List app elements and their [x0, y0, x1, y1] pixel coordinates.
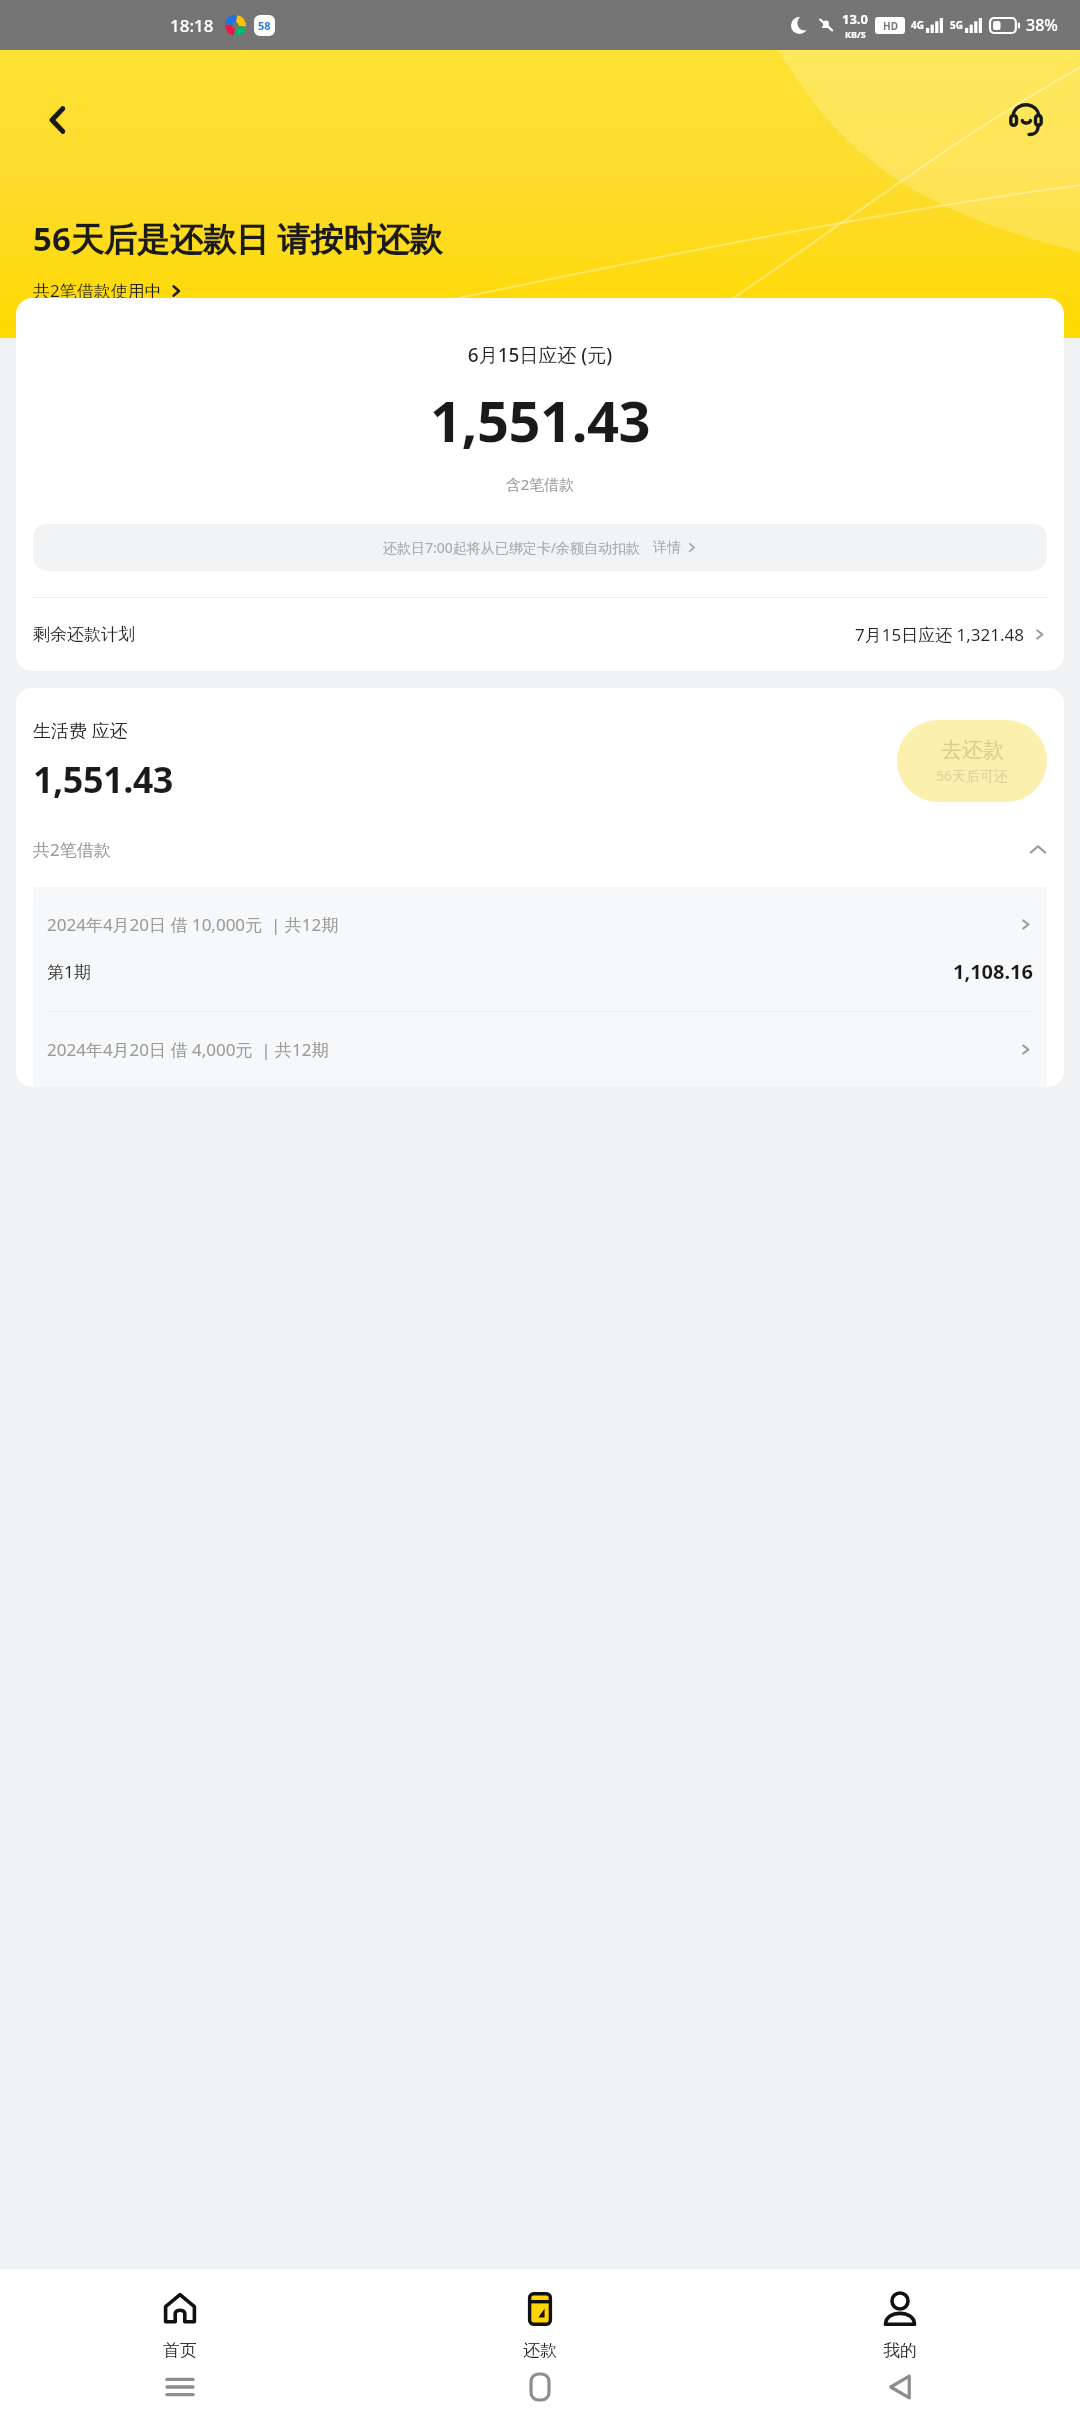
button[interactable]: 还款 [360, 2269, 720, 2362]
button[interactable]: 2024年4月20日 借 10,000元 | 共12期 [33, 887, 1047, 1011]
staticText: 4G [911, 18, 924, 32]
staticText: 6月15日应还 (元) [16, 342, 1064, 368]
staticText: 去还款 [941, 737, 1004, 763]
staticText: 1,551.43 [16, 382, 1064, 458]
staticText: 生活费 应还 [33, 718, 128, 743]
staticText: 7月15日应还 1,321.48 [855, 623, 1025, 646]
staticText: 首页 [163, 2340, 197, 2361]
staticText: 共2笔借款 [33, 838, 111, 861]
staticText: HD [883, 19, 898, 33]
staticText: 共2笔借款使用中 [33, 279, 162, 302]
button[interactable]: 共2笔借款使用中 [33, 279, 184, 302]
button[interactable]: Home [360, 2362, 720, 2412]
button[interactable]: Back [720, 2362, 1080, 2412]
button[interactable]: Recents [0, 2362, 360, 2412]
staticText: 2024年4月20日 借 4,000元 | 共12期 [47, 1038, 329, 1061]
staticText: 1,551.43 [33, 755, 173, 804]
staticText: 38% [1026, 14, 1058, 36]
staticText: 含2笔借款 [16, 474, 1064, 494]
staticText: 2024年4月20日 借 10,000元 | 共12期 [47, 913, 339, 936]
staticText: 还款 [523, 2340, 557, 2361]
staticText: 第1期 [47, 960, 91, 983]
staticText: 18:18 [170, 14, 214, 37]
staticText: 详情 [653, 539, 681, 557]
staticText: 13.0 [842, 10, 868, 28]
staticText: 剩余还款计划 [33, 624, 135, 645]
staticText: 5G [950, 18, 963, 32]
button[interactable]: 共2笔借款 [16, 826, 1064, 873]
button[interactable]: 2024年4月20日 借 4,000元 | 共12期 [33, 1012, 1047, 1087]
staticText: KB/S [845, 28, 866, 40]
button[interactable]: 去还款 [897, 720, 1047, 802]
button[interactable]: 剩余还款计划 [16, 598, 1064, 671]
button[interactable]: 首页 [0, 2269, 360, 2362]
button[interactable]: 我的 [720, 2269, 1080, 2362]
staticText: 56天后是还款日 请按时还款 [33, 216, 443, 261]
staticText: 1,108.16 [953, 958, 1033, 985]
staticText: 我的 [883, 2340, 917, 2361]
button[interactable]: Customer service [998, 92, 1054, 148]
staticText: 58 [258, 18, 271, 33]
button[interactable]: 还款日7:00起将从已绑定卡/余额自动扣款 [33, 524, 1047, 571]
button[interactable]: Back [30, 92, 86, 148]
staticText: 还款日7:00起将从已绑定卡/余额自动扣款 [383, 538, 640, 557]
staticText: 56天后可还 [936, 766, 1009, 785]
